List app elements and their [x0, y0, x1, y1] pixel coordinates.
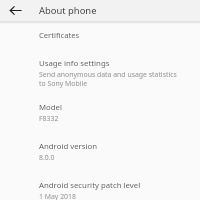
staticText: Usage info settings	[39, 58, 110, 69]
staticText: Model	[39, 102, 62, 113]
staticText: 8.0.0	[39, 153, 55, 162]
staticText: F8332	[39, 114, 59, 123]
button[interactable]: Android security patch level	[0, 180, 200, 200]
staticText: Android security patch level	[39, 180, 141, 191]
staticText: Certificates	[39, 30, 80, 40]
staticText: Android version	[39, 141, 98, 152]
staticText: 1 May 2018	[39, 192, 76, 200]
staticText: About phone	[39, 4, 97, 17]
button[interactable]: Certificates	[0, 30, 200, 40]
staticText: Send anonymous data and usage statistics…	[39, 70, 177, 88]
button[interactable]: Android version	[0, 141, 200, 162]
button[interactable]: Model	[0, 102, 200, 123]
button[interactable]: Usage info settings	[0, 58, 200, 88]
button[interactable]: Back	[4, 0, 26, 21]
